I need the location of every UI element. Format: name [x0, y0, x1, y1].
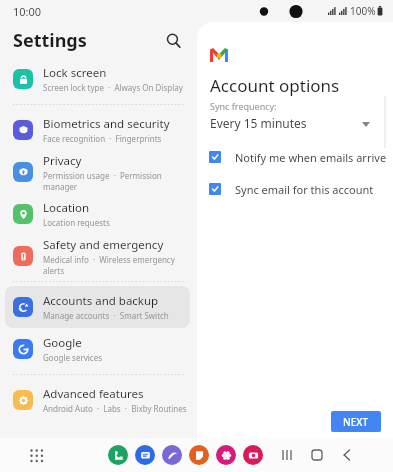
- button[interactable]: Safety and emergency: [5, 235, 190, 277]
- staticText: Google services: [43, 352, 103, 363]
- staticText: Sync frequency:: [210, 100, 277, 112]
- button[interactable]: App 0: [108, 445, 128, 465]
- button[interactable]: App 1: [135, 445, 155, 465]
- staticText: Accounts and backup: [43, 293, 159, 309]
- button[interactable]: App 3: [189, 445, 209, 465]
- button[interactable]: Sync email for this account: [205, 178, 390, 200]
- button[interactable]: Location: [5, 193, 190, 235]
- staticText: Advanced features: [43, 386, 144, 402]
- button[interactable]: App 4: [216, 445, 236, 465]
- button[interactable]: Sync frequency dropdown: [357, 115, 375, 133]
- button[interactable]: Home: [306, 444, 328, 466]
- staticText: Face recognition · Fingerprints: [43, 133, 162, 144]
- staticText: 10:00: [13, 4, 42, 19]
- button[interactable]: App 5: [243, 445, 263, 465]
- staticText: Notify me when emails arrive: [235, 150, 387, 165]
- staticText: Every 15 minutes: [210, 115, 307, 131]
- staticText: Screen lock type · Always On Display: [43, 82, 183, 93]
- button[interactable]: Recents: [276, 444, 298, 466]
- staticText: Biometrics and security: [43, 116, 170, 132]
- staticText: Medical info · Wireless emergency alerts: [43, 254, 190, 276]
- button[interactable]: App 2: [162, 445, 182, 465]
- button[interactable]: Back: [336, 444, 358, 466]
- staticText: Permission usage · Permission manager: [43, 170, 190, 192]
- button[interactable]: Privacy: [5, 151, 190, 193]
- button[interactable]: Accounts and backup: [5, 286, 190, 328]
- staticText: Location requests: [43, 217, 110, 228]
- button[interactable]: Advanced features: [5, 379, 190, 421]
- button[interactable]: Lock screen: [5, 58, 190, 100]
- button[interactable]: Notify me when emails arrive: [205, 146, 390, 168]
- button[interactable]: Apps: [25, 444, 47, 466]
- button[interactable]: Biometrics and security: [5, 109, 190, 151]
- staticText: Android Auto · Labs · Bixby Routines: [43, 403, 187, 414]
- staticText: Google: [43, 335, 82, 351]
- staticText: Account options: [210, 74, 340, 97]
- button[interactable]: NEXT: [331, 411, 381, 432]
- staticText: Location: [43, 200, 90, 216]
- staticText: Manage accounts · Smart Switch: [43, 310, 169, 321]
- staticText: 100%: [350, 4, 376, 18]
- staticText: Safety and emergency: [43, 237, 164, 253]
- staticText: Sync email for this account: [235, 182, 374, 197]
- button[interactable]: Google: [5, 328, 190, 370]
- button[interactable]: Search: [162, 29, 184, 51]
- staticText: Lock screen: [43, 65, 107, 81]
- staticText: Privacy: [43, 153, 82, 169]
- staticText: Settings: [13, 28, 87, 53]
- staticText: NEXT: [343, 415, 369, 429]
